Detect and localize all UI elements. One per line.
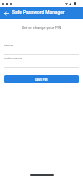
staticText: SAVE PIN bbox=[35, 78, 48, 81]
staticText: New PIN bbox=[4, 44, 14, 47]
staticText: Confirm new PIN bbox=[4, 57, 23, 60]
staticText: Safe Password Manager bbox=[12, 10, 65, 16]
button[interactable]: Back bbox=[0, 7, 12, 19]
button[interactable]: SAVE PIN bbox=[4, 75, 79, 83]
staticText: Set or change your PIN bbox=[0, 25, 83, 30]
